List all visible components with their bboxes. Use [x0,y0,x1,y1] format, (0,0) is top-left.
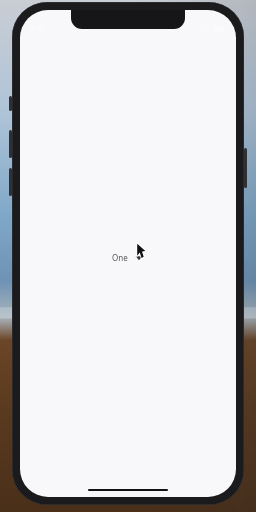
button[interactable]: One [109,248,146,267]
other: Open dropdown [135,255,143,261]
staticText: One [112,252,128,263]
